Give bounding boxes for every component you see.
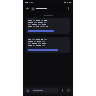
- button[interactable]: Add attachment: [25, 88, 30, 93]
- button[interactable]: [28, 49, 58, 51]
- button[interactable]: Back: [25, 6, 30, 11]
- button[interactable]: Send: [66, 88, 71, 93]
- button[interactable]: Voice input: [60, 88, 65, 93]
- button[interactable]: More options: [66, 6, 71, 11]
- button[interactable]: [31, 88, 59, 93]
- button[interactable]: [28, 30, 54, 32]
- button[interactable]: [26, 37, 70, 53]
- button[interactable]: [26, 18, 70, 34]
